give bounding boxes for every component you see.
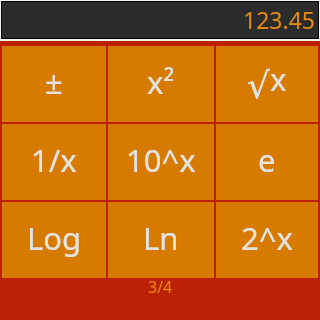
button[interactable]: e xyxy=(216,124,318,200)
staticText: Log xyxy=(27,217,82,259)
staticText: 3/4 xyxy=(148,276,173,298)
button[interactable]: Log xyxy=(2,202,106,278)
staticText: 123.45 xyxy=(243,4,315,35)
button[interactable]: Plus minus xyxy=(2,46,106,122)
button[interactable]: Natural log xyxy=(108,202,214,278)
button[interactable]: Ten to the power of x xyxy=(108,124,214,200)
button[interactable]: Square root of x xyxy=(216,46,318,122)
button[interactable]: One over x xyxy=(2,124,106,200)
staticText: Ln xyxy=(143,217,179,259)
staticText: 10^x xyxy=(126,139,196,181)
button[interactable]: Two to the power of x xyxy=(216,202,318,278)
button[interactable]: Calculator display xyxy=(2,2,318,38)
staticText: 2^x xyxy=(241,217,293,259)
staticText: 1/x xyxy=(31,139,77,181)
staticText: e xyxy=(258,139,276,181)
staticText: x² xyxy=(147,61,175,103)
staticText: ± xyxy=(45,61,63,103)
button[interactable]: x squared xyxy=(108,46,214,122)
staticText: √x xyxy=(247,58,287,106)
